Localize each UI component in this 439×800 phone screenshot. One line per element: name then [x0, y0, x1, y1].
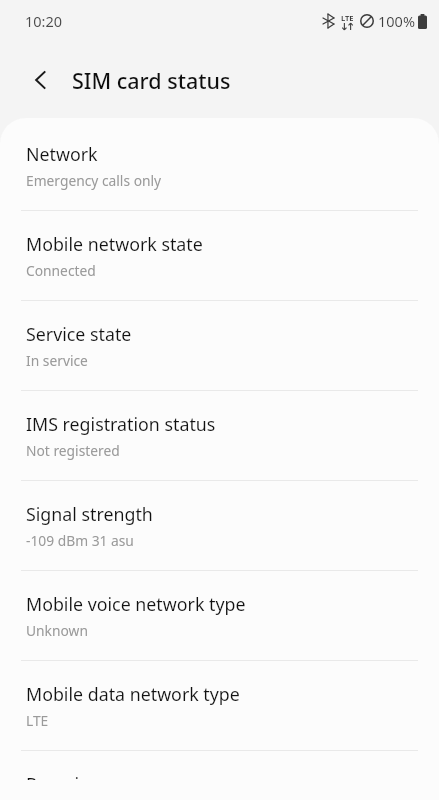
- button[interactable]: Mobile data network type: [0, 661, 439, 750]
- button[interactable]: Back: [24, 63, 58, 97]
- staticText: Connected: [26, 261, 96, 280]
- staticText: 100%: [378, 11, 415, 31]
- button[interactable]: IMS registration status: [0, 391, 439, 480]
- staticText: Emergency calls only: [26, 171, 162, 190]
- staticText: Unknown: [26, 621, 88, 640]
- staticText: Mobile data network type: [26, 682, 240, 706]
- staticText: 10:20: [25, 11, 63, 31]
- staticText: Roaming: [26, 772, 101, 780]
- staticText: Signal strength: [26, 502, 153, 526]
- staticText: -109 dBm 31 asu: [26, 531, 134, 550]
- button[interactable]: Network: [0, 118, 439, 210]
- staticText: Mobile network state: [26, 232, 203, 256]
- staticText: SIM card status: [72, 66, 231, 95]
- staticText: In service: [26, 351, 88, 370]
- button[interactable]: Mobile voice network type: [0, 571, 439, 660]
- staticText: LTE: [26, 711, 49, 730]
- button[interactable]: Signal strength: [0, 481, 439, 570]
- staticText: IMS registration status: [26, 412, 216, 436]
- staticText: LTE: [341, 13, 354, 23]
- staticText: Mobile voice network type: [26, 592, 246, 616]
- button[interactable]: Service state: [0, 301, 439, 390]
- staticText: Service state: [26, 322, 132, 346]
- button[interactable]: Mobile network state: [0, 211, 439, 300]
- staticText: Not registered: [26, 441, 120, 460]
- staticText: Network: [26, 142, 98, 166]
- button[interactable]: Roaming: [0, 751, 439, 800]
